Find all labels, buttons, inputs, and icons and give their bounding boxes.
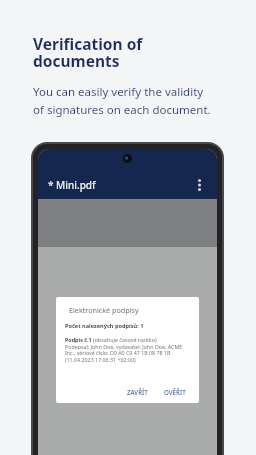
staticText: You can easily verify the validity of si… [33,84,211,117]
staticText: OVĚŘIT [164,388,186,396]
button[interactable]: * Mini.pdf [48,178,96,192]
staticText: Podpis č.1 (obsahuje časové razítko) [65,336,157,343]
staticText: Počet nalezených podpisů: 1 [65,322,144,330]
button[interactable]: OVĚŘIT [159,385,191,399]
staticText: ZAVŘÍT [127,388,148,396]
staticText: Elektronické podpisy [69,305,139,315]
button[interactable]: More options [189,175,209,195]
staticText: Verification of documents [33,33,229,72]
staticText: Podepsal: John Doe, vydavatel: John Doe,… [65,343,191,364]
button[interactable]: ZAVŘÍT [122,385,153,399]
